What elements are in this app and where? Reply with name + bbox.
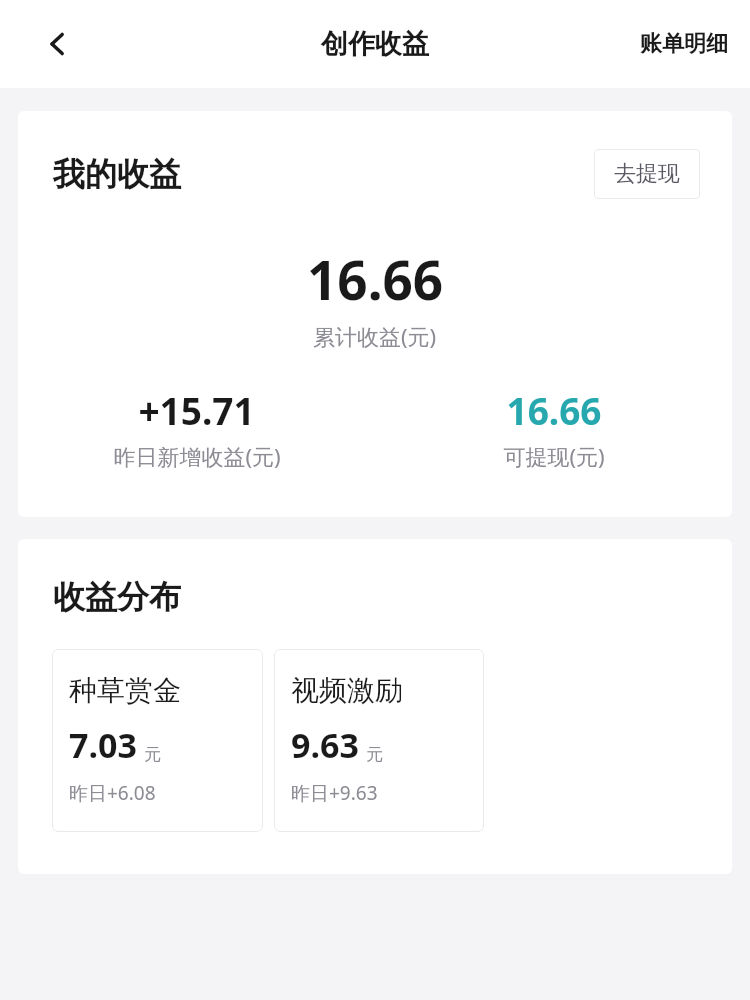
staticText: 昨日+6.08 bbox=[69, 780, 156, 806]
staticText: 16.66 bbox=[506, 385, 602, 435]
staticText: 昨日新增收益(元) bbox=[113, 441, 281, 471]
staticText: 种草赏金 bbox=[69, 673, 181, 708]
staticText: 可提现(元) bbox=[503, 441, 605, 471]
staticText: 7.03 bbox=[69, 722, 137, 768]
staticText: 创作收益 bbox=[321, 27, 429, 61]
staticText: 元 bbox=[366, 744, 383, 765]
staticText: 收益分布 bbox=[53, 577, 181, 617]
staticText: 9.63 bbox=[291, 722, 359, 768]
staticText: 累计收益(元) bbox=[313, 321, 437, 351]
staticText: 元 bbox=[144, 744, 161, 765]
button[interactable]: 视频激励 bbox=[274, 649, 484, 832]
staticText: 我的收益 bbox=[53, 154, 181, 194]
button[interactable]: 去提现 bbox=[594, 149, 700, 199]
staticText: 视频激励 bbox=[291, 673, 403, 708]
staticText: 16.66 bbox=[307, 243, 444, 315]
button[interactable]: 账单明细 bbox=[618, 16, 750, 72]
button[interactable]: 16.66 bbox=[375, 385, 732, 471]
button[interactable]: Back bbox=[30, 16, 86, 72]
button[interactable]: +15.71 bbox=[18, 385, 375, 471]
staticText: +15.71 bbox=[138, 385, 255, 435]
button[interactable]: 种草赏金 bbox=[52, 649, 263, 832]
staticText: 昨日+9.63 bbox=[291, 780, 378, 806]
staticText: 账单明细 bbox=[640, 30, 728, 58]
staticText: 去提现 bbox=[614, 160, 680, 188]
